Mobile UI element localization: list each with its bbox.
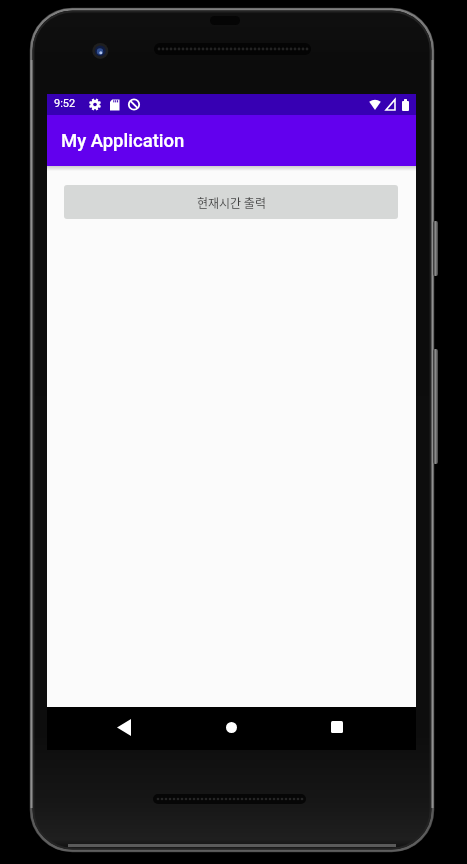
staticText: 9:52 <box>54 97 76 110</box>
button[interactable]: 현재시간 출력 <box>64 185 398 219</box>
button[interactable] <box>216 712 246 742</box>
staticText: 현재시간 출력 <box>197 194 266 211</box>
staticText: My Application <box>61 130 185 152</box>
button[interactable] <box>109 712 139 742</box>
button[interactable] <box>322 712 352 742</box>
